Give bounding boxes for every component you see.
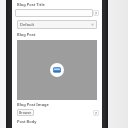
staticText: Blog Post Title	[17, 2, 45, 7]
button[interactable]: Add media	[17, 40, 97, 100]
button[interactable]: Help	[93, 110, 99, 116]
staticText: Browse	[19, 110, 32, 115]
button[interactable]: Default	[17, 20, 97, 29]
staticText: Blog Post	[17, 32, 36, 37]
staticText: ?	[95, 111, 97, 116]
staticText: Default	[20, 22, 35, 27]
button[interactable]: Browse	[17, 109, 34, 116]
staticText: ?	[95, 11, 97, 16]
staticText: Post Body	[17, 119, 37, 124]
staticText: Blog Post Image	[17, 102, 49, 107]
button[interactable]	[15, 9, 93, 17]
button[interactable]: Help	[93, 10, 99, 16]
